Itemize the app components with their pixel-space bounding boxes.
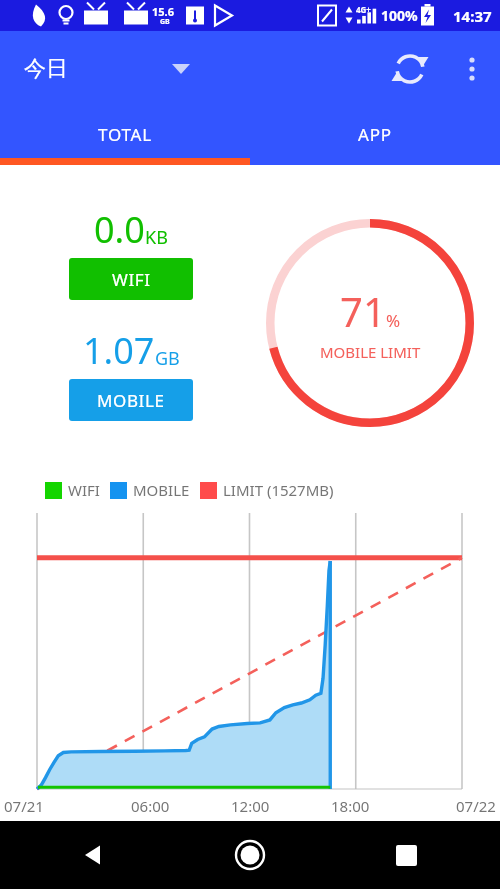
staticText: 15.6 xyxy=(152,4,174,19)
staticText: GB xyxy=(160,17,170,27)
staticText: MOBILE LIMIT xyxy=(320,342,421,362)
staticText: 1.07 xyxy=(83,326,155,375)
button[interactable]: WIFI xyxy=(69,258,193,300)
staticText: 71 xyxy=(340,284,386,338)
staticText: 12:00 xyxy=(231,796,270,816)
button[interactable]: MOBILE xyxy=(69,379,193,421)
staticText: 07/21 xyxy=(4,796,44,816)
staticText: 今日 xyxy=(24,55,68,83)
button[interactable]: Refresh xyxy=(382,41,438,97)
staticText: 14:37 xyxy=(453,6,492,26)
button[interactable]: TOTAL xyxy=(0,103,250,165)
staticText: APP xyxy=(358,123,392,146)
staticText: 4G+ xyxy=(356,4,371,15)
button[interactable]: APP xyxy=(250,103,500,165)
staticText: % xyxy=(386,309,401,332)
staticText: 06:00 xyxy=(131,796,170,816)
staticText: TOTAL xyxy=(98,123,152,146)
staticText: KB xyxy=(145,225,168,250)
staticText: MOBILE xyxy=(133,480,190,500)
staticText: WIFI xyxy=(112,268,151,291)
staticText: 18:00 xyxy=(331,796,370,816)
button[interactable]: More options xyxy=(444,41,500,97)
staticText: GB xyxy=(155,346,180,371)
staticText: 07/22 xyxy=(456,796,496,816)
staticText: MOBILE xyxy=(97,389,165,412)
staticText: LIMIT (1527MB) xyxy=(223,480,334,500)
staticText: 0.0 xyxy=(94,205,145,254)
staticText: WIFI xyxy=(68,480,100,500)
button[interactable]: Back xyxy=(70,831,118,879)
button[interactable]: Home xyxy=(226,831,274,879)
staticText: 100% xyxy=(381,6,418,25)
button[interactable]: 今日 xyxy=(24,41,214,97)
button[interactable]: Recent apps xyxy=(382,831,430,879)
